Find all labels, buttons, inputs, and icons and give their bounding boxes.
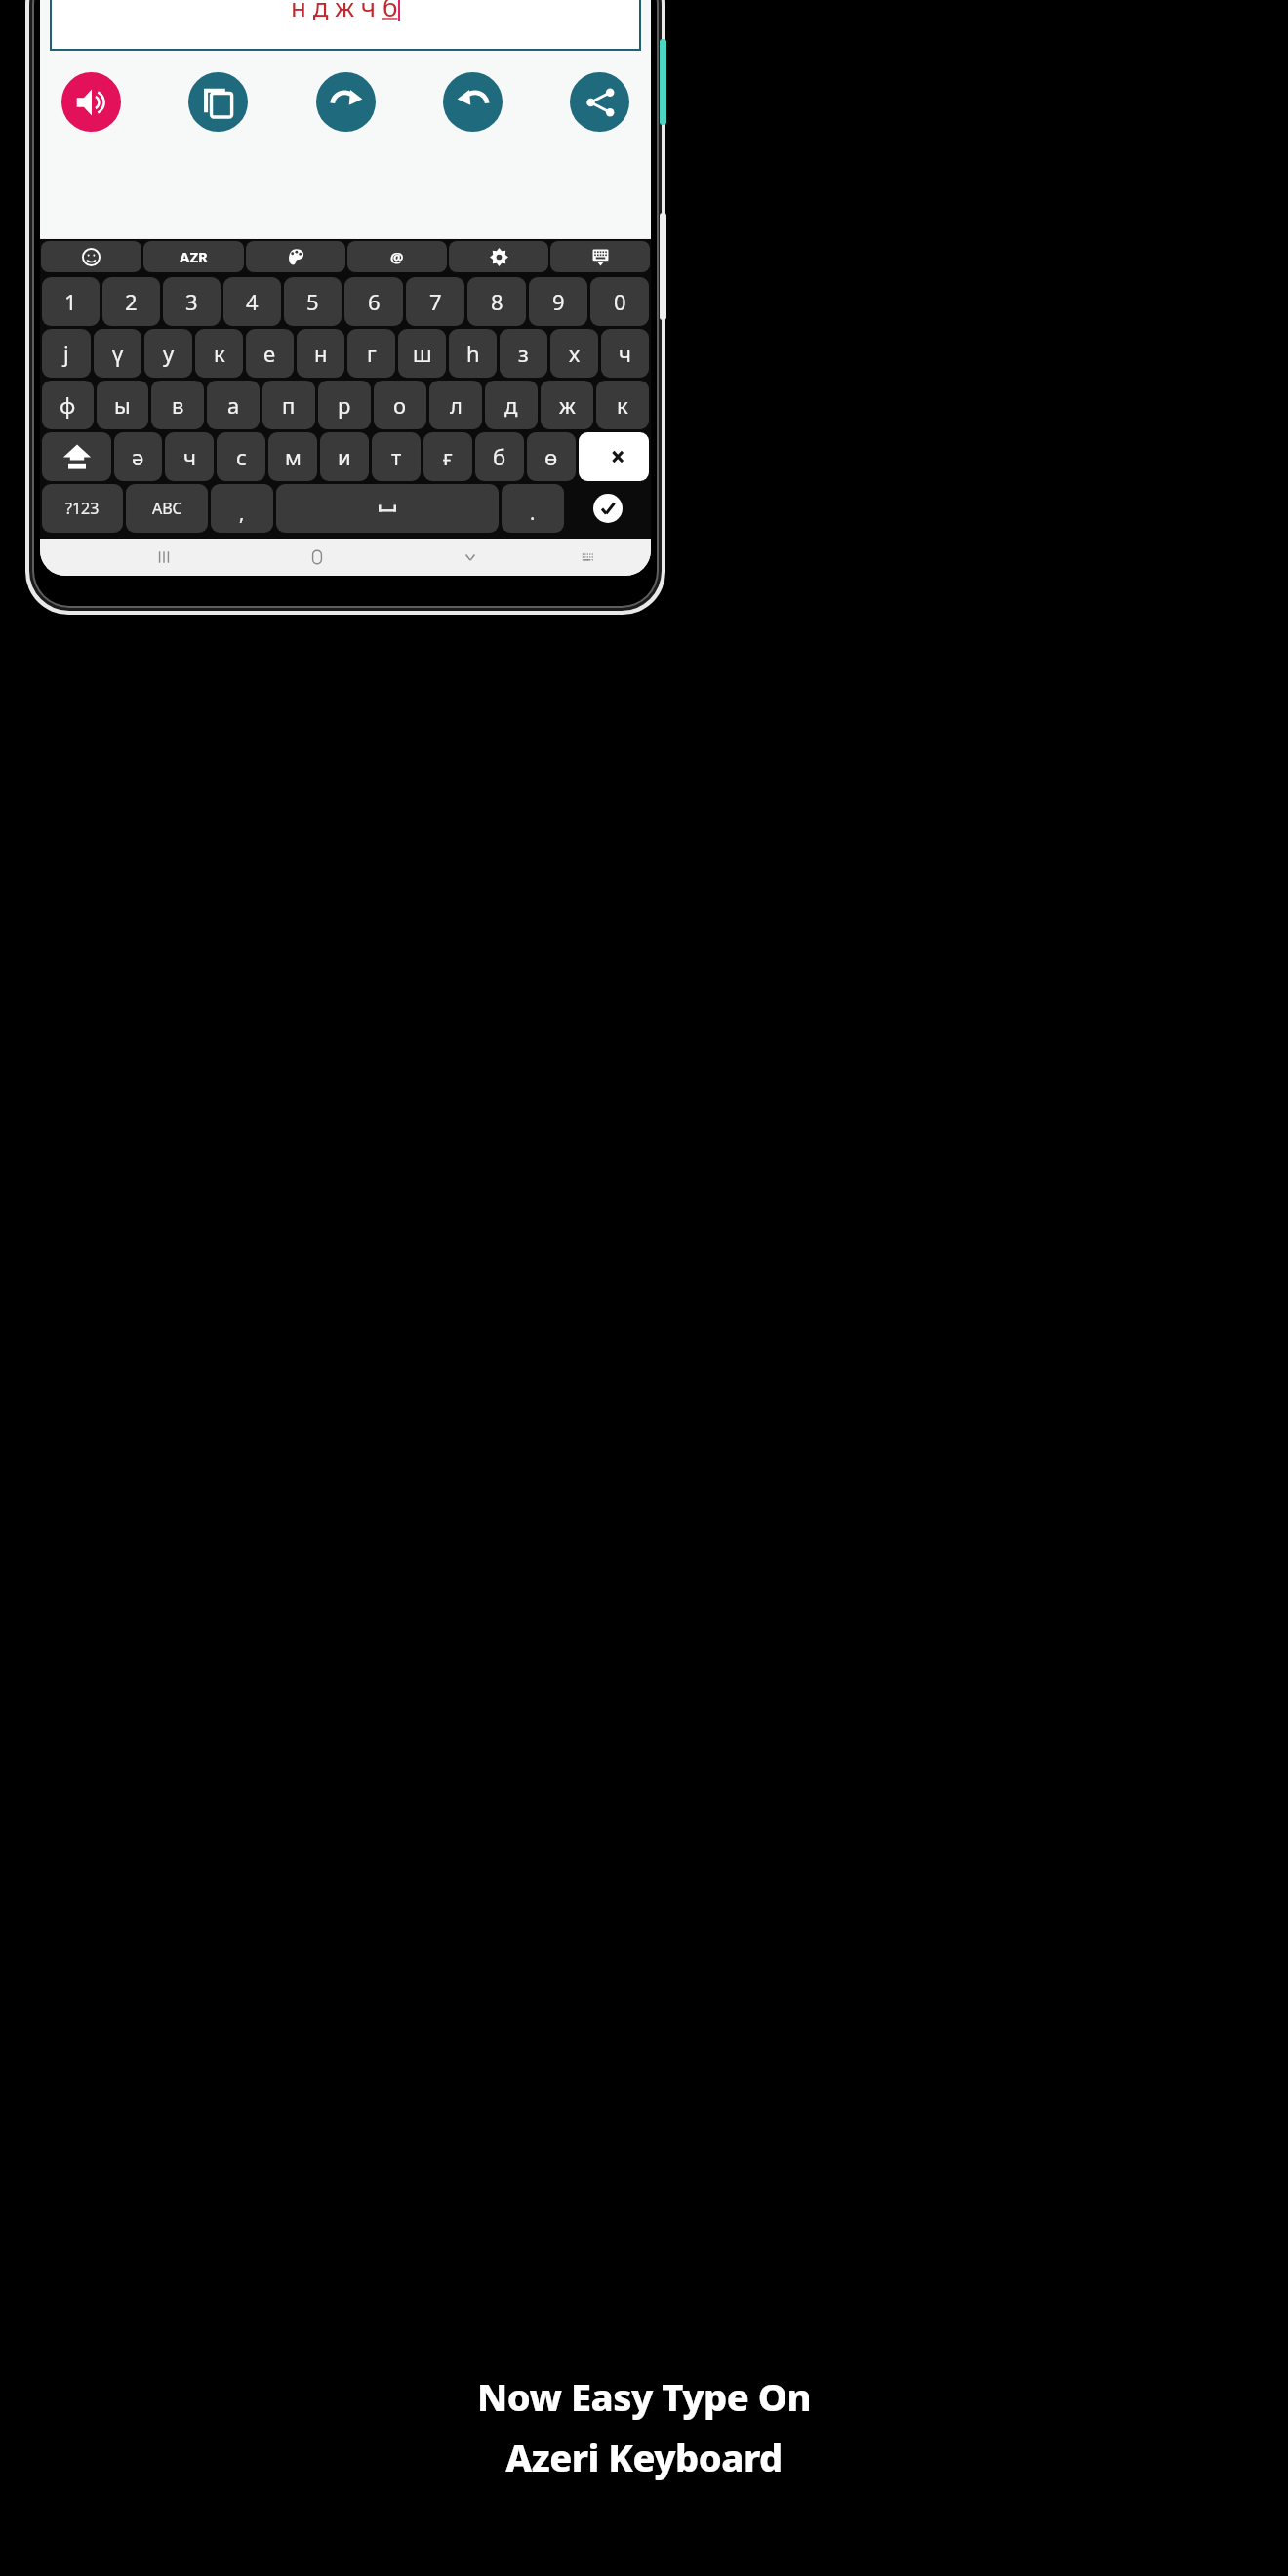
button[interactable]: м [268, 432, 317, 481]
button[interactable]: а [207, 381, 260, 429]
button[interactable]: Emoji [41, 241, 141, 272]
button[interactable]: Enter [567, 484, 649, 533]
staticText: 2 [125, 287, 138, 316]
staticText: 3 [185, 287, 198, 316]
button[interactable]: б [475, 432, 524, 481]
staticText: е [263, 339, 276, 368]
staticText: р [338, 390, 351, 420]
button[interactable]: ч [601, 329, 649, 378]
button[interactable]: 6 [344, 277, 403, 326]
button[interactable]: Redo [316, 72, 376, 132]
button[interactable]: , [211, 484, 273, 533]
button[interactable]: Speak [61, 72, 121, 132]
button[interactable]: Backspace [579, 432, 649, 481]
button[interactable]: ?123 [42, 484, 123, 533]
staticText: ү [112, 339, 124, 368]
button[interactable]: к [195, 329, 243, 378]
staticText: 7 [429, 287, 442, 316]
button[interactable]: у [144, 329, 192, 378]
staticText: AZR [180, 247, 208, 266]
button[interactable]: ABC [126, 484, 208, 533]
button[interactable]: г [347, 329, 395, 378]
button[interactable]: @ [347, 241, 447, 272]
button[interactable]: Recents [145, 539, 182, 576]
button[interactable]: Theme [246, 241, 345, 272]
button[interactable]: и [320, 432, 369, 481]
button[interactable]: н д ж ч [50, 0, 641, 51]
button[interactable]: е [246, 329, 294, 378]
staticText: @ [390, 247, 404, 266]
button[interactable]: 4 [223, 277, 281, 326]
staticText: к [214, 339, 225, 368]
button[interactable]: д [485, 381, 538, 429]
button[interactable]: х [550, 329, 598, 378]
button[interactable]: о [374, 381, 426, 429]
button[interactable]: 3 [163, 277, 221, 326]
staticText: з [518, 339, 529, 368]
staticText: Azeri Keyboard [505, 2432, 783, 2482]
staticText: ч [183, 442, 196, 471]
staticText: j [63, 339, 69, 368]
button[interactable]: р [318, 381, 371, 429]
button[interactable]: h [449, 329, 497, 378]
button[interactable]: Keyboard layout [550, 241, 650, 272]
staticText: т [391, 442, 402, 471]
button[interactable]: ғ [423, 432, 472, 481]
staticText: у [163, 339, 175, 368]
button[interactable]: Home [299, 539, 336, 576]
staticText: ы [114, 390, 131, 420]
button[interactable]: Undo [443, 72, 503, 132]
button[interactable]: ш [398, 329, 446, 378]
staticText: о [393, 390, 407, 420]
button[interactable]: в [151, 381, 204, 429]
staticText: ?123 [65, 498, 100, 519]
button[interactable]: Settings [449, 241, 548, 272]
button[interactable]: 2 [102, 277, 160, 326]
staticText: 0 [614, 287, 626, 316]
button[interactable]: н [297, 329, 344, 378]
staticText: к [617, 390, 628, 420]
button[interactable]: с [217, 432, 265, 481]
button[interactable]: ч [165, 432, 214, 481]
button[interactable]: 8 [467, 277, 526, 326]
button[interactable]: Copy [188, 72, 248, 132]
staticText: 5 [306, 287, 319, 316]
staticText: ф [60, 390, 76, 420]
button[interactable]: л [429, 381, 482, 429]
button[interactable]: Shift [42, 432, 111, 481]
staticText: м [285, 442, 302, 471]
button[interactable]: 1 [42, 277, 100, 326]
staticText: ш [413, 339, 432, 368]
staticText: х [569, 339, 581, 368]
button[interactable]: ә [114, 432, 162, 481]
button[interactable]: AZR [143, 241, 244, 272]
staticText: ғ [443, 442, 453, 471]
button[interactable]: 9 [529, 277, 587, 326]
button[interactable]: Space [276, 484, 499, 533]
staticText: ч [619, 339, 631, 368]
button[interactable]: 7 [406, 277, 464, 326]
staticText: а [227, 390, 240, 420]
button[interactable]: 5 [284, 277, 342, 326]
button[interactable]: ж [541, 381, 593, 429]
button[interactable]: ф [42, 381, 94, 429]
staticText: ө [544, 442, 558, 471]
button[interactable]: 0 [590, 277, 649, 326]
button[interactable]: ы [97, 381, 148, 429]
button[interactable]: j [42, 329, 91, 378]
button[interactable]: Switch keyboard [569, 539, 606, 576]
button[interactable]: . [502, 484, 564, 533]
button[interactable]: Hide keyboard [452, 539, 489, 576]
button[interactable]: ү [94, 329, 141, 378]
button[interactable]: ө [527, 432, 576, 481]
button[interactable]: т [372, 432, 421, 481]
button[interactable]: к [596, 381, 649, 429]
staticText: h [466, 339, 480, 368]
button[interactable]: з [500, 329, 547, 378]
staticText: 1 [64, 287, 77, 316]
staticText: д [504, 390, 518, 420]
button[interactable]: Share [570, 72, 629, 132]
staticText: ж [559, 390, 576, 420]
button[interactable]: п [262, 381, 315, 429]
staticText: б [382, 0, 398, 23]
